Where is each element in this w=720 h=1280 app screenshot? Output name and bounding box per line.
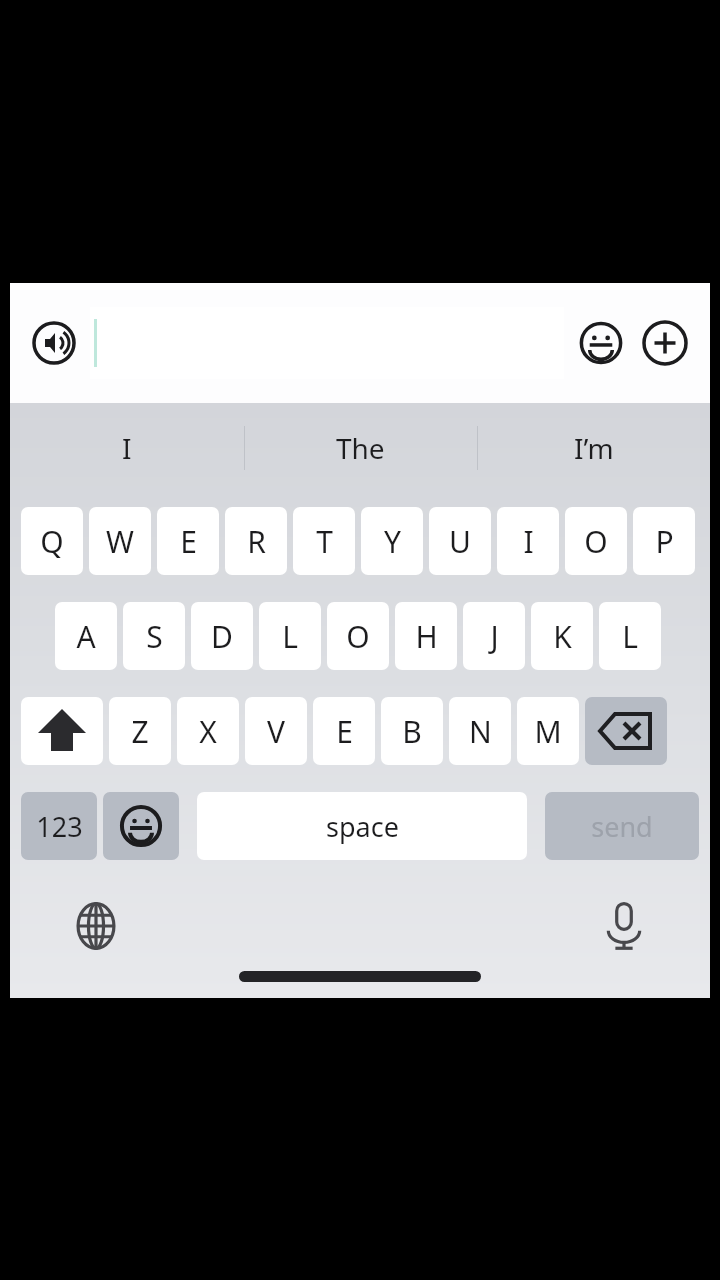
staticText: W — [106, 521, 134, 562]
button[interactable]: Q — [21, 507, 83, 575]
staticText: T — [316, 521, 333, 562]
button[interactable]: Emoji — [578, 320, 624, 366]
staticText: send — [591, 808, 653, 845]
staticText: I — [523, 521, 534, 562]
button[interactable]: L — [599, 602, 661, 670]
staticText: Q — [40, 521, 64, 562]
button[interactable]: T — [293, 507, 355, 575]
staticText: P — [655, 521, 674, 562]
staticText: E — [336, 711, 353, 752]
button[interactable]: B — [381, 697, 443, 765]
button[interactable] — [90, 307, 564, 379]
button[interactable]: I — [10, 403, 244, 493]
staticText: S — [146, 616, 163, 657]
button[interactable]: M — [517, 697, 579, 765]
staticText: K — [553, 616, 572, 657]
button[interactable]: E — [313, 697, 375, 765]
staticText: D — [211, 616, 233, 657]
button[interactable]: V — [245, 697, 307, 765]
staticText: L — [622, 616, 638, 657]
staticText: I — [122, 429, 132, 467]
button[interactable]: X — [177, 697, 239, 765]
button[interactable]: O — [327, 602, 389, 670]
staticText: 123 — [36, 808, 83, 845]
staticText: Y — [384, 521, 401, 562]
button[interactable]: 123 — [21, 792, 97, 860]
staticText: H — [415, 616, 438, 657]
button[interactable]: A — [55, 602, 117, 670]
button[interactable]: W — [89, 507, 151, 575]
button[interactable]: P — [633, 507, 695, 575]
button[interactable]: E — [157, 507, 219, 575]
staticText: E — [180, 521, 197, 562]
staticText: V — [267, 711, 285, 752]
button[interactable]: I’m — [477, 403, 710, 493]
button[interactable]: Backspace — [585, 697, 667, 765]
staticText: R — [247, 521, 266, 562]
button[interactable]: Voice input — [596, 898, 652, 954]
button[interactable]: L — [259, 602, 321, 670]
staticText: O — [584, 521, 608, 562]
button[interactable]: H — [395, 602, 457, 670]
staticText: X — [199, 711, 217, 752]
button[interactable]: K — [531, 602, 593, 670]
staticText: I’m — [574, 429, 614, 467]
button[interactable]: N — [449, 697, 511, 765]
button[interactable]: space — [197, 792, 527, 860]
button[interactable]: Switch language — [68, 898, 124, 954]
button[interactable]: The — [244, 403, 477, 493]
staticText: L — [282, 616, 298, 657]
button[interactable]: R — [225, 507, 287, 575]
button[interactable]: send — [545, 792, 699, 860]
staticText: J — [490, 616, 499, 657]
button[interactable]: Audio message — [32, 321, 76, 365]
button[interactable]: O — [565, 507, 627, 575]
staticText: O — [346, 616, 370, 657]
button[interactable]: Emoji keyboard — [103, 792, 179, 860]
button[interactable]: S — [123, 602, 185, 670]
staticText: N — [469, 711, 492, 752]
staticText: M — [534, 711, 562, 752]
button[interactable]: Add attachment — [642, 320, 688, 366]
staticText: space — [326, 808, 399, 845]
staticText: B — [402, 711, 422, 752]
button[interactable]: Shift — [21, 697, 103, 765]
staticText: U — [449, 521, 471, 562]
button[interactable]: I — [497, 507, 559, 575]
staticText: The — [336, 429, 385, 467]
button[interactable]: U — [429, 507, 491, 575]
button[interactable]: D — [191, 602, 253, 670]
staticText: Z — [131, 711, 149, 752]
button[interactable]: Z — [109, 697, 171, 765]
button[interactable]: Y — [361, 507, 423, 575]
button[interactable]: J — [463, 602, 525, 670]
staticText: A — [76, 616, 96, 657]
